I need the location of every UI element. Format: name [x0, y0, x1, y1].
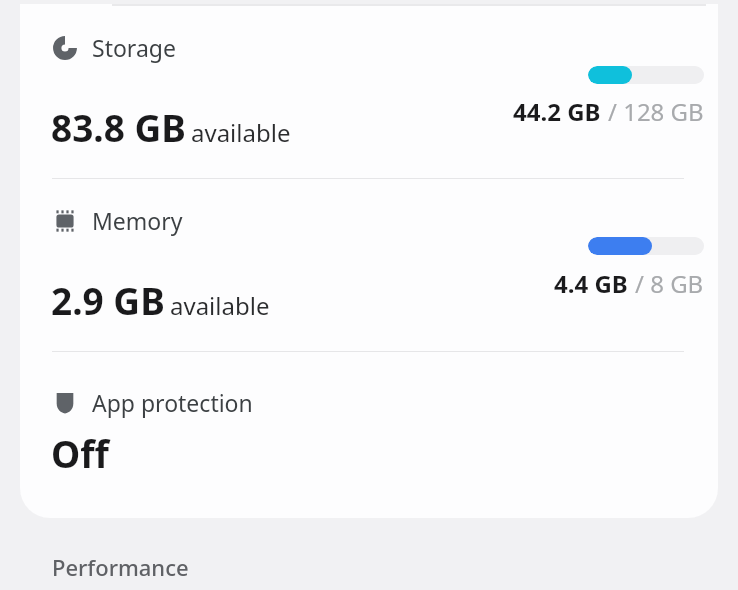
- staticText: Memory: [92, 205, 183, 236]
- button[interactable]: App protection: [20, 352, 718, 502]
- staticText: available: [170, 289, 270, 322]
- staticText: / 8 GB: [635, 267, 704, 300]
- other: Memory: [52, 208, 78, 234]
- staticText: Performance: [52, 552, 189, 582]
- staticText: 4.4 GB: [554, 267, 628, 300]
- staticText: / 128 GB: [608, 95, 704, 128]
- staticText: available: [191, 116, 291, 149]
- staticText: 44.2 GB: [513, 95, 601, 128]
- staticText: Off: [51, 428, 109, 478]
- other: App protection: [52, 390, 78, 416]
- button[interactable]: Memory: [20, 179, 718, 351]
- staticText: 2.9 GB: [51, 275, 165, 325]
- staticText: App protection: [92, 387, 253, 418]
- staticText: Storage: [92, 32, 176, 63]
- staticText: 83.8 GB: [51, 102, 186, 152]
- other: Storage: [52, 35, 78, 61]
- button[interactable]: Storage: [20, 6, 718, 178]
